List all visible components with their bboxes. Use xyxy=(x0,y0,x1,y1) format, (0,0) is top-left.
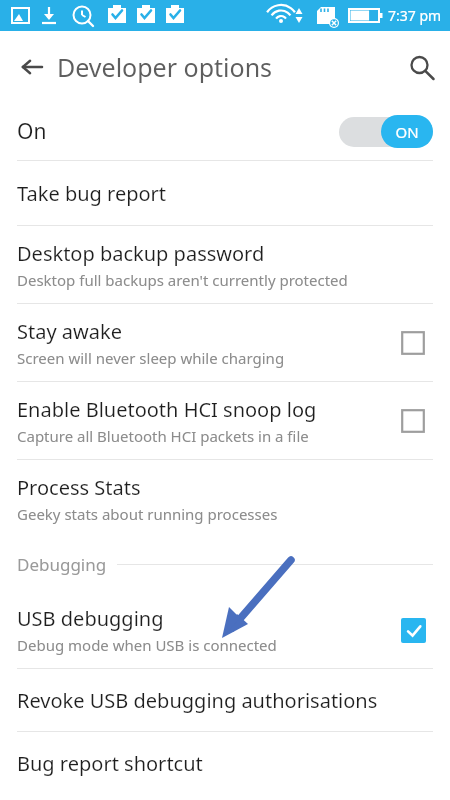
staticText: Debugging xyxy=(17,553,107,576)
staticText: Stay awake xyxy=(17,318,122,345)
button[interactable]: Stay awake xyxy=(0,304,450,381)
staticText: Debug mode when USB is connected xyxy=(17,635,277,655)
staticText: On xyxy=(17,117,339,146)
button[interactable]: USB debugging xyxy=(393,610,433,650)
staticText: ON xyxy=(395,122,419,142)
button[interactable]: Search xyxy=(399,45,443,89)
staticText: Developer options xyxy=(57,50,273,84)
button[interactable]: Enable Bluetooth HCI snoop log xyxy=(0,382,450,459)
button[interactable]: Enable Bluetooth HCI snoop log xyxy=(393,401,433,441)
button[interactable]: Stay awake xyxy=(393,323,433,363)
button[interactable]: Process Stats xyxy=(0,460,450,537)
staticText: Desktop backup password xyxy=(17,240,265,267)
button[interactable]: USB debugging xyxy=(0,591,450,668)
button[interactable]: Take bug report xyxy=(0,161,450,225)
staticText: Revoke USB debugging authorisations xyxy=(17,687,378,714)
staticText: USB debugging xyxy=(17,605,164,632)
staticText: 7:37 pm xyxy=(388,6,442,25)
button[interactable]: On xyxy=(0,102,450,160)
staticText: Screen will never sleep while charging xyxy=(17,348,285,368)
staticText: Geeky stats about running processes xyxy=(17,504,278,524)
button[interactable]: Bug report shortcut xyxy=(0,732,450,794)
staticText: Take bug report xyxy=(17,180,167,207)
button[interactable]: Desktop backup password xyxy=(0,226,450,303)
staticText: Process Stats xyxy=(17,474,141,501)
staticText: Capture all Bluetooth HCI packets in a f… xyxy=(17,426,309,446)
button[interactable]: Revoke USB debugging authorisations xyxy=(0,669,450,731)
button[interactable]: Back xyxy=(10,45,54,89)
staticText: Desktop full backups aren't currently pr… xyxy=(17,270,348,290)
staticText: Bug report shortcut xyxy=(17,750,203,777)
staticText: Enable Bluetooth HCI snoop log xyxy=(17,396,317,423)
